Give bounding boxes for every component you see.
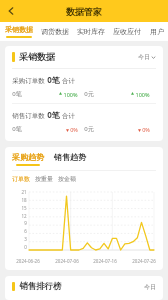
staticText: 2024-07-16 [93,258,117,264]
staticText: 6 [24,228,27,234]
staticText: 采购趋势 [12,152,44,162]
staticText: 100% [63,91,78,98]
staticText: 0% [70,126,78,133]
staticText: 0% [142,126,150,133]
staticText: 2024-07-26 [132,258,156,264]
button[interactable]: 实时库存 [73,22,109,41]
staticText: 9 [24,220,27,226]
staticText: 用户 [150,27,164,36]
staticText: 18 [21,197,27,203]
button[interactable]: 今日 [144,283,156,291]
staticText: 100% [135,91,150,98]
button[interactable]: 按重量 [35,175,53,183]
button[interactable]: 调货数据 [37,22,73,41]
staticText: 合计 [62,112,75,120]
staticText: 0笔 [12,125,22,133]
button[interactable]: 用户 [145,22,168,41]
staticText: 0笔 [12,90,22,98]
staticText: 合计 [62,77,75,85]
staticText: 采购订单数 [12,77,45,85]
staticText: 调货数据 [41,27,69,36]
button[interactable]: Back [0,0,22,22]
button[interactable]: 今日 [138,53,156,61]
button[interactable]: 采销数据 [0,22,37,41]
staticText: 15 [21,205,27,211]
staticText: 0笔 [47,109,60,120]
button[interactable]: 采购趋势 [12,152,44,166]
button[interactable]: 按金额 [58,175,76,183]
staticText: 应收应付 [113,27,141,36]
staticText: 12 [21,213,27,219]
staticText: 实时库存 [77,27,105,36]
staticText: 3 [24,236,27,242]
button[interactable]: 应收应付 [109,22,145,41]
staticText: 销售排行榜 [19,281,62,292]
staticText: 销售趋势 [54,152,86,162]
staticText: 采销数据 [5,25,33,34]
staticText: 2024-07-06 [55,258,79,264]
button[interactable]: 销售趋势 [54,152,86,166]
staticText: 2024-06-26 [16,258,40,264]
staticText: 今日 [138,53,150,61]
staticText: 0笔 [47,74,60,85]
staticText: 按金额 [58,175,76,183]
staticText: 21 [21,189,27,195]
staticText: 按重量 [35,175,53,183]
button[interactable]: 订单数 [12,175,30,183]
staticText: 0 [24,244,27,250]
staticText: 0元 [84,125,94,133]
staticText: 订单数 [12,175,30,183]
staticText: 采销数据 [19,51,55,62]
staticText: 今日 [144,283,156,291]
staticText: 销售订单数 [12,112,45,120]
staticText: 数据管家 [66,6,102,17]
staticText: 0元 [84,90,94,98]
